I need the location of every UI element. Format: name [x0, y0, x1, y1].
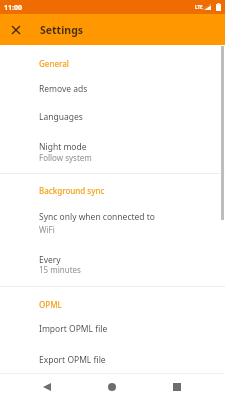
- button[interactable]: Night mode: [0, 135, 225, 169]
- button[interactable]: Languages: [0, 105, 225, 131]
- staticText: Languages: [39, 111, 83, 123]
- staticText: Remove ads: [39, 83, 88, 95]
- button[interactable]: Export OPML file: [0, 348, 225, 374]
- staticText: Import OPML file: [39, 323, 108, 335]
- button[interactable]: Recents: [159, 373, 195, 400]
- staticText: Settings: [40, 23, 84, 37]
- button[interactable]: Home: [94, 373, 130, 400]
- staticText: Background sync: [39, 185, 105, 196]
- staticText: General: [39, 58, 69, 69]
- staticText: Night mode: [39, 141, 87, 153]
- staticText: OPML: [39, 299, 62, 310]
- button[interactable]: Sync only when connected to: [0, 205, 225, 243]
- button[interactable]: Every: [0, 248, 225, 284]
- staticText: 15 minutes: [39, 264, 81, 275]
- staticText: Sync only when connected to: [39, 211, 155, 223]
- staticText: Follow system: [39, 152, 92, 163]
- staticText: WiFi: [39, 224, 55, 235]
- staticText: Export OPML file: [39, 354, 106, 366]
- button[interactable]: Close: [0, 14, 32, 45]
- button[interactable]: Import OPML file: [0, 317, 225, 343]
- staticText: LTE: [195, 4, 203, 10]
- staticText: 11:00: [4, 3, 22, 13]
- button[interactable]: Back: [29, 373, 65, 400]
- button[interactable]: Remove ads: [0, 77, 225, 101]
- staticText: Every: [39, 254, 61, 266]
